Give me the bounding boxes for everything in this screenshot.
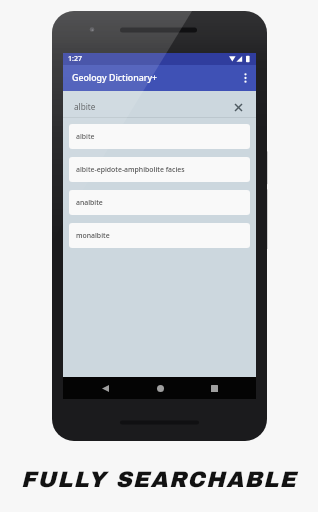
staticText: analbite xyxy=(76,198,103,207)
button[interactable]: analbite xyxy=(69,190,250,215)
button[interactable]: Recent apps xyxy=(204,378,224,398)
staticText: FULLY SEARCHABLE xyxy=(0,467,318,491)
button[interactable]: More options xyxy=(235,68,255,88)
staticText: albite xyxy=(76,132,95,141)
button[interactable]: albite xyxy=(63,91,256,118)
button[interactable]: albite-epidote-amphibolite facies xyxy=(69,157,250,182)
button[interactable]: albite xyxy=(69,124,250,149)
button[interactable]: monalbite xyxy=(69,223,250,248)
staticText: albite-epidote-amphibolite facies xyxy=(76,165,185,174)
button[interactable]: Clear search xyxy=(232,101,245,114)
staticText: monalbite xyxy=(76,231,110,240)
button[interactable]: Home xyxy=(150,378,170,398)
staticText: Geology Dictionary+ xyxy=(72,72,158,84)
staticText: albite xyxy=(74,101,96,112)
staticText: 1:27 xyxy=(68,54,82,64)
button[interactable]: Back xyxy=(95,378,115,398)
